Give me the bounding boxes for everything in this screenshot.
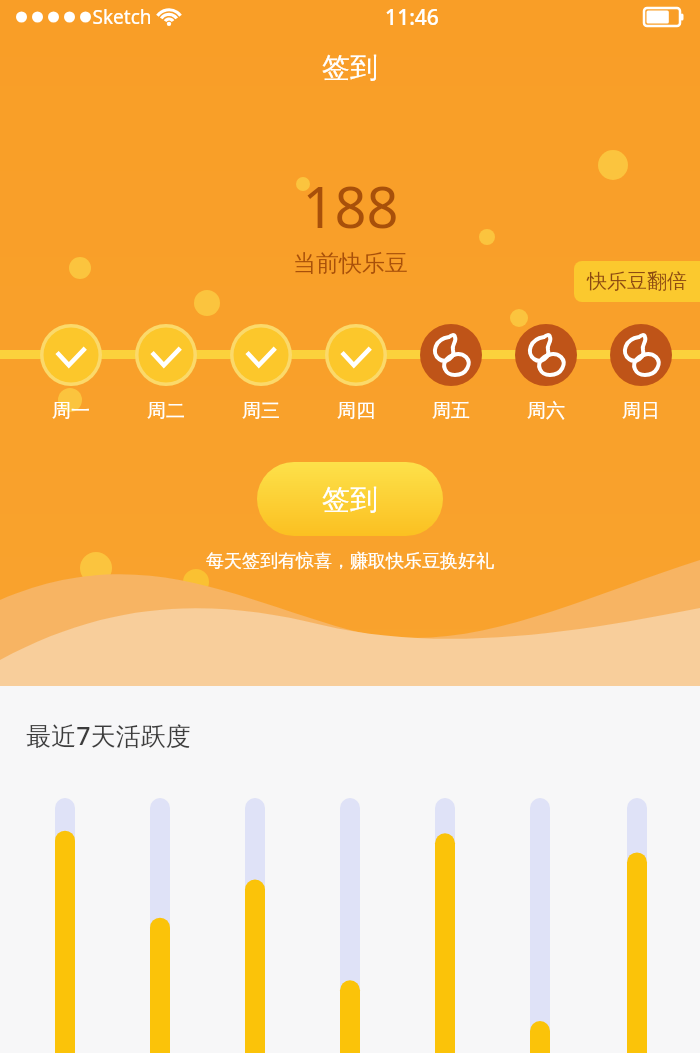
staticText: Sketch (92, 4, 152, 30)
button[interactable]: 周五 (407, 324, 495, 423)
staticText: 最近7天活跃度 (26, 718, 191, 752)
staticText: 每天签到有惊喜，赚取快乐豆换好礼 (206, 550, 494, 573)
staticText: 周日 (622, 399, 660, 423)
button[interactable]: 周四 (312, 324, 400, 423)
button[interactable]: 周三 (217, 324, 305, 423)
staticText: 周四 (337, 399, 375, 423)
staticText: 188 (302, 168, 399, 244)
staticText: 周五 (432, 399, 470, 423)
staticText: 当前快乐豆 (293, 249, 408, 278)
staticText: 周二 (147, 399, 185, 423)
staticText: 签到 (322, 482, 378, 517)
staticText: 周六 (527, 399, 565, 423)
staticText: 11:46 (385, 3, 439, 32)
button[interactable]: 签到 (257, 462, 443, 536)
button[interactable]: 快乐豆翻倍 (574, 261, 700, 302)
button[interactable]: 周六 (502, 324, 590, 423)
button[interactable]: 周日 (597, 324, 685, 423)
staticText: 周三 (242, 399, 280, 423)
staticText: 周一 (52, 399, 90, 423)
button[interactable]: 周二 (122, 324, 210, 423)
button[interactable]: 周一 (27, 324, 115, 423)
staticText: 快乐豆翻倍 (587, 269, 687, 294)
staticText: 签到 (322, 50, 378, 85)
